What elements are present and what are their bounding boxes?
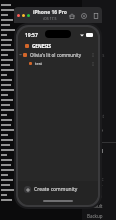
staticText: Block li [87, 159, 102, 165]
staticText: iOS 17.5 [43, 16, 57, 21]
button[interactable]: Create community [18, 181, 98, 197]
staticText: Backup [87, 213, 103, 219]
button[interactable]: Privacy [84, 192, 116, 199]
staticText: Passwo [87, 127, 103, 133]
staticText: Interfac [87, 176, 104, 182]
staticText: Friend l [87, 148, 103, 154]
button[interactable]: Account [84, 112, 116, 119]
button[interactable]: Appear [84, 182, 116, 189]
button[interactable]: Close [17, 14, 20, 17]
button[interactable]: Logout [84, 119, 116, 126]
button[interactable]: Rotate [92, 12, 99, 19]
button[interactable]: Backup [84, 212, 116, 219]
button[interactable]: Olivia's lit ol community [18, 50, 98, 59]
button[interactable]: test [18, 59, 98, 68]
button[interactable]: More options [90, 52, 96, 58]
button[interactable]: Friend l [84, 147, 116, 154]
button[interactable]: Interfac [84, 175, 116, 182]
button[interactable]: Passwo [84, 126, 116, 133]
staticText: Add-ons [87, 52, 105, 58]
staticText: Privacy [87, 193, 103, 199]
button[interactable]: Add-ons [84, 51, 116, 58]
button[interactable]: Home [68, 12, 75, 19]
staticText: Appear [87, 183, 103, 189]
staticText: iPhone 16 Pro [33, 9, 67, 16]
staticText: Account [87, 113, 105, 119]
staticText: GENESIS [32, 43, 96, 49]
button[interactable]: Settings [80, 12, 87, 19]
button[interactable]: Zoom [27, 14, 30, 17]
staticText: Create community [34, 186, 78, 193]
staticText: Olivia's lit ol community [30, 52, 90, 58]
staticText: 19:57 [25, 32, 38, 39]
button[interactable]: More options [90, 61, 96, 67]
button[interactable]: Minimize [22, 14, 25, 17]
staticText: test [35, 61, 90, 66]
button[interactable]: Default [84, 202, 116, 209]
staticText: Default [87, 203, 103, 209]
button[interactable]: GENESIS [18, 41, 98, 50]
staticText: Logout [87, 120, 102, 126]
button[interactable]: Block li [84, 158, 116, 165]
